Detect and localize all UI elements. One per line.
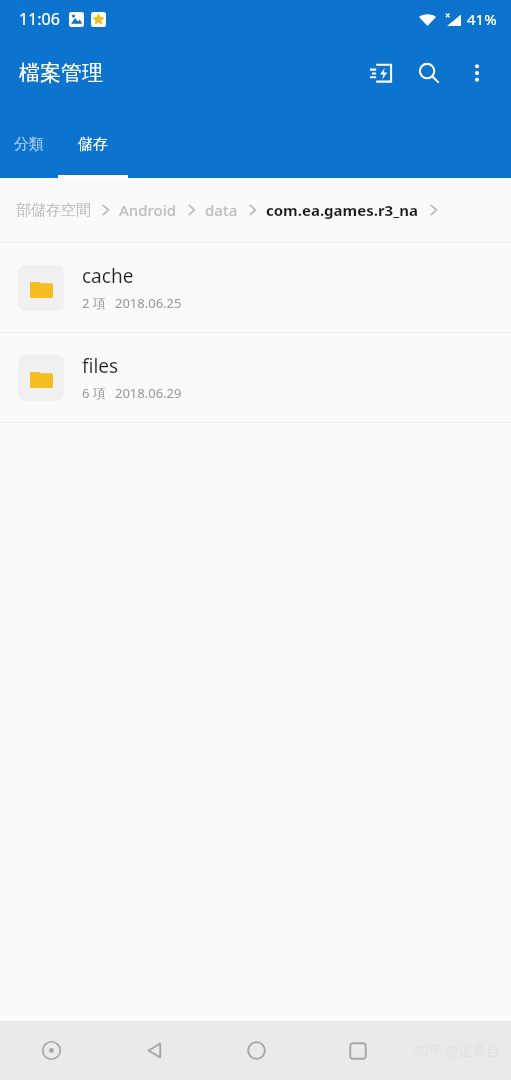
button[interactable]: Quick transfer (357, 49, 405, 97)
button[interactable]: Back (103, 1021, 205, 1080)
button[interactable]: cache (0, 243, 511, 332)
staticText: 檔案管理 (19, 60, 103, 86)
button[interactable]: 分類 (0, 122, 58, 178)
staticText: cache (82, 263, 134, 289)
button[interactable]: Assistant (0, 1021, 103, 1080)
staticText: Android (119, 200, 177, 220)
staticText: 2 項 (82, 294, 106, 312)
button[interactable]: data (205, 200, 238, 220)
button[interactable]: com.ea.games.r3_na (266, 200, 419, 220)
staticText: 6 項 (82, 384, 106, 402)
staticText: data (205, 200, 238, 220)
button[interactable]: 部儲存空間 (16, 201, 91, 220)
button[interactable]: Search (405, 49, 453, 97)
button[interactable]: Android (119, 200, 177, 220)
staticText: 儲存 (78, 135, 108, 154)
staticText: 41% (467, 9, 497, 29)
staticText: com.ea.games.r3_na (266, 200, 419, 220)
staticText: files (82, 353, 119, 379)
staticText: 2018.06.25 (115, 294, 182, 312)
staticText: 2018.06.29 (115, 384, 182, 402)
button[interactable]: files (0, 333, 511, 422)
button[interactable]: 儲存 (58, 122, 128, 178)
button[interactable]: Recents (307, 1021, 409, 1080)
button[interactable]: Home (205, 1021, 307, 1080)
button[interactable]: More options (453, 49, 501, 97)
staticText: 11:06 (19, 8, 60, 30)
staticText: 部儲存空間 (16, 201, 91, 220)
staticText: 分類 (14, 135, 44, 154)
